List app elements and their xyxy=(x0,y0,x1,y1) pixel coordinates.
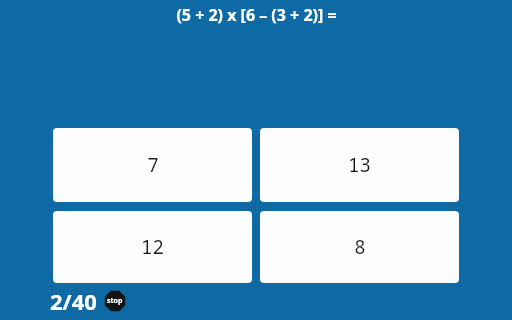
button[interactable]: 7 xyxy=(53,128,252,202)
staticText: stop xyxy=(107,296,123,306)
staticText: 13 xyxy=(348,152,371,178)
button[interactable]: 12 xyxy=(53,211,252,283)
staticText: 7 xyxy=(147,152,159,178)
staticText: 8 xyxy=(354,234,366,260)
button[interactable]: 8 xyxy=(260,211,459,283)
staticText: 2/40 xyxy=(50,286,97,316)
staticText: (5 + 2) x [6 – (3 + 2)] = xyxy=(176,4,337,26)
button[interactable]: Stop xyxy=(104,290,126,312)
button[interactable]: 13 xyxy=(260,128,459,202)
staticText: 12 xyxy=(141,234,164,260)
